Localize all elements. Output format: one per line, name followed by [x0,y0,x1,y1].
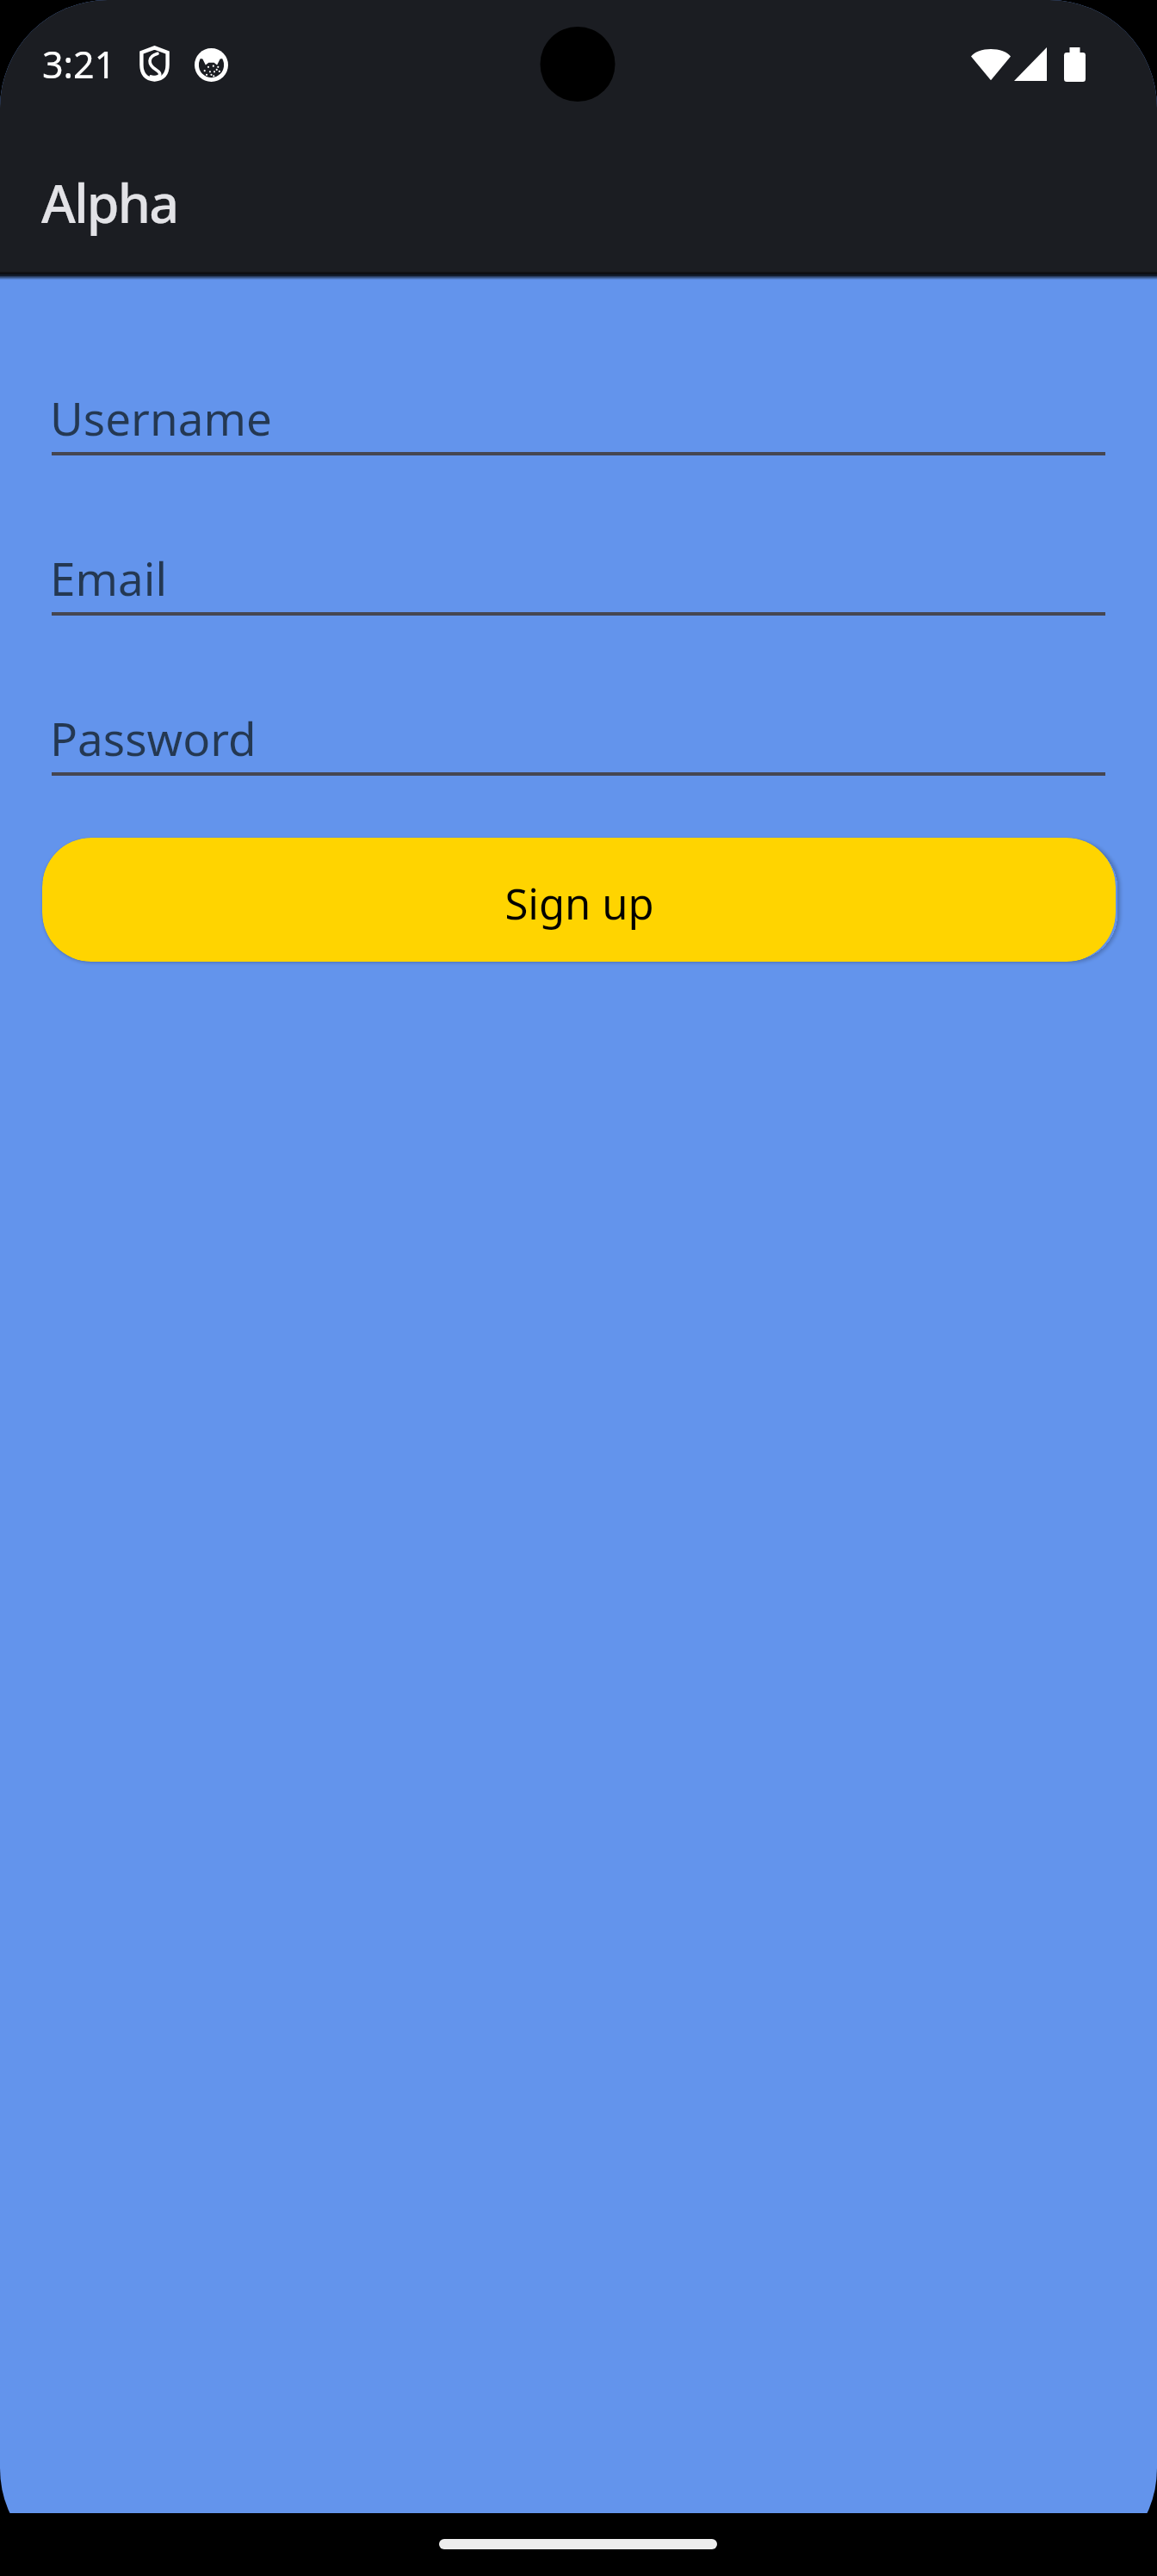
other: Battery [1064,47,1086,82]
staticText: Email [50,547,168,609]
staticText: Username [50,387,272,449]
staticText: Sign up [504,875,654,932]
staticText: Password [50,707,257,769]
button[interactable]: Email [0,455,1157,616]
other: Privacy protection [139,46,170,82]
staticText: Alpha [41,167,178,238]
staticText: 3:21 [42,39,116,90]
other: Mobile signal [1014,47,1047,81]
button[interactable]: Username [0,295,1157,455]
button[interactable]: Password [0,616,1157,776]
other: Notification [195,48,228,82]
button[interactable]: Sign up [42,838,1116,962]
other: Wi-Fi [971,46,1011,81]
